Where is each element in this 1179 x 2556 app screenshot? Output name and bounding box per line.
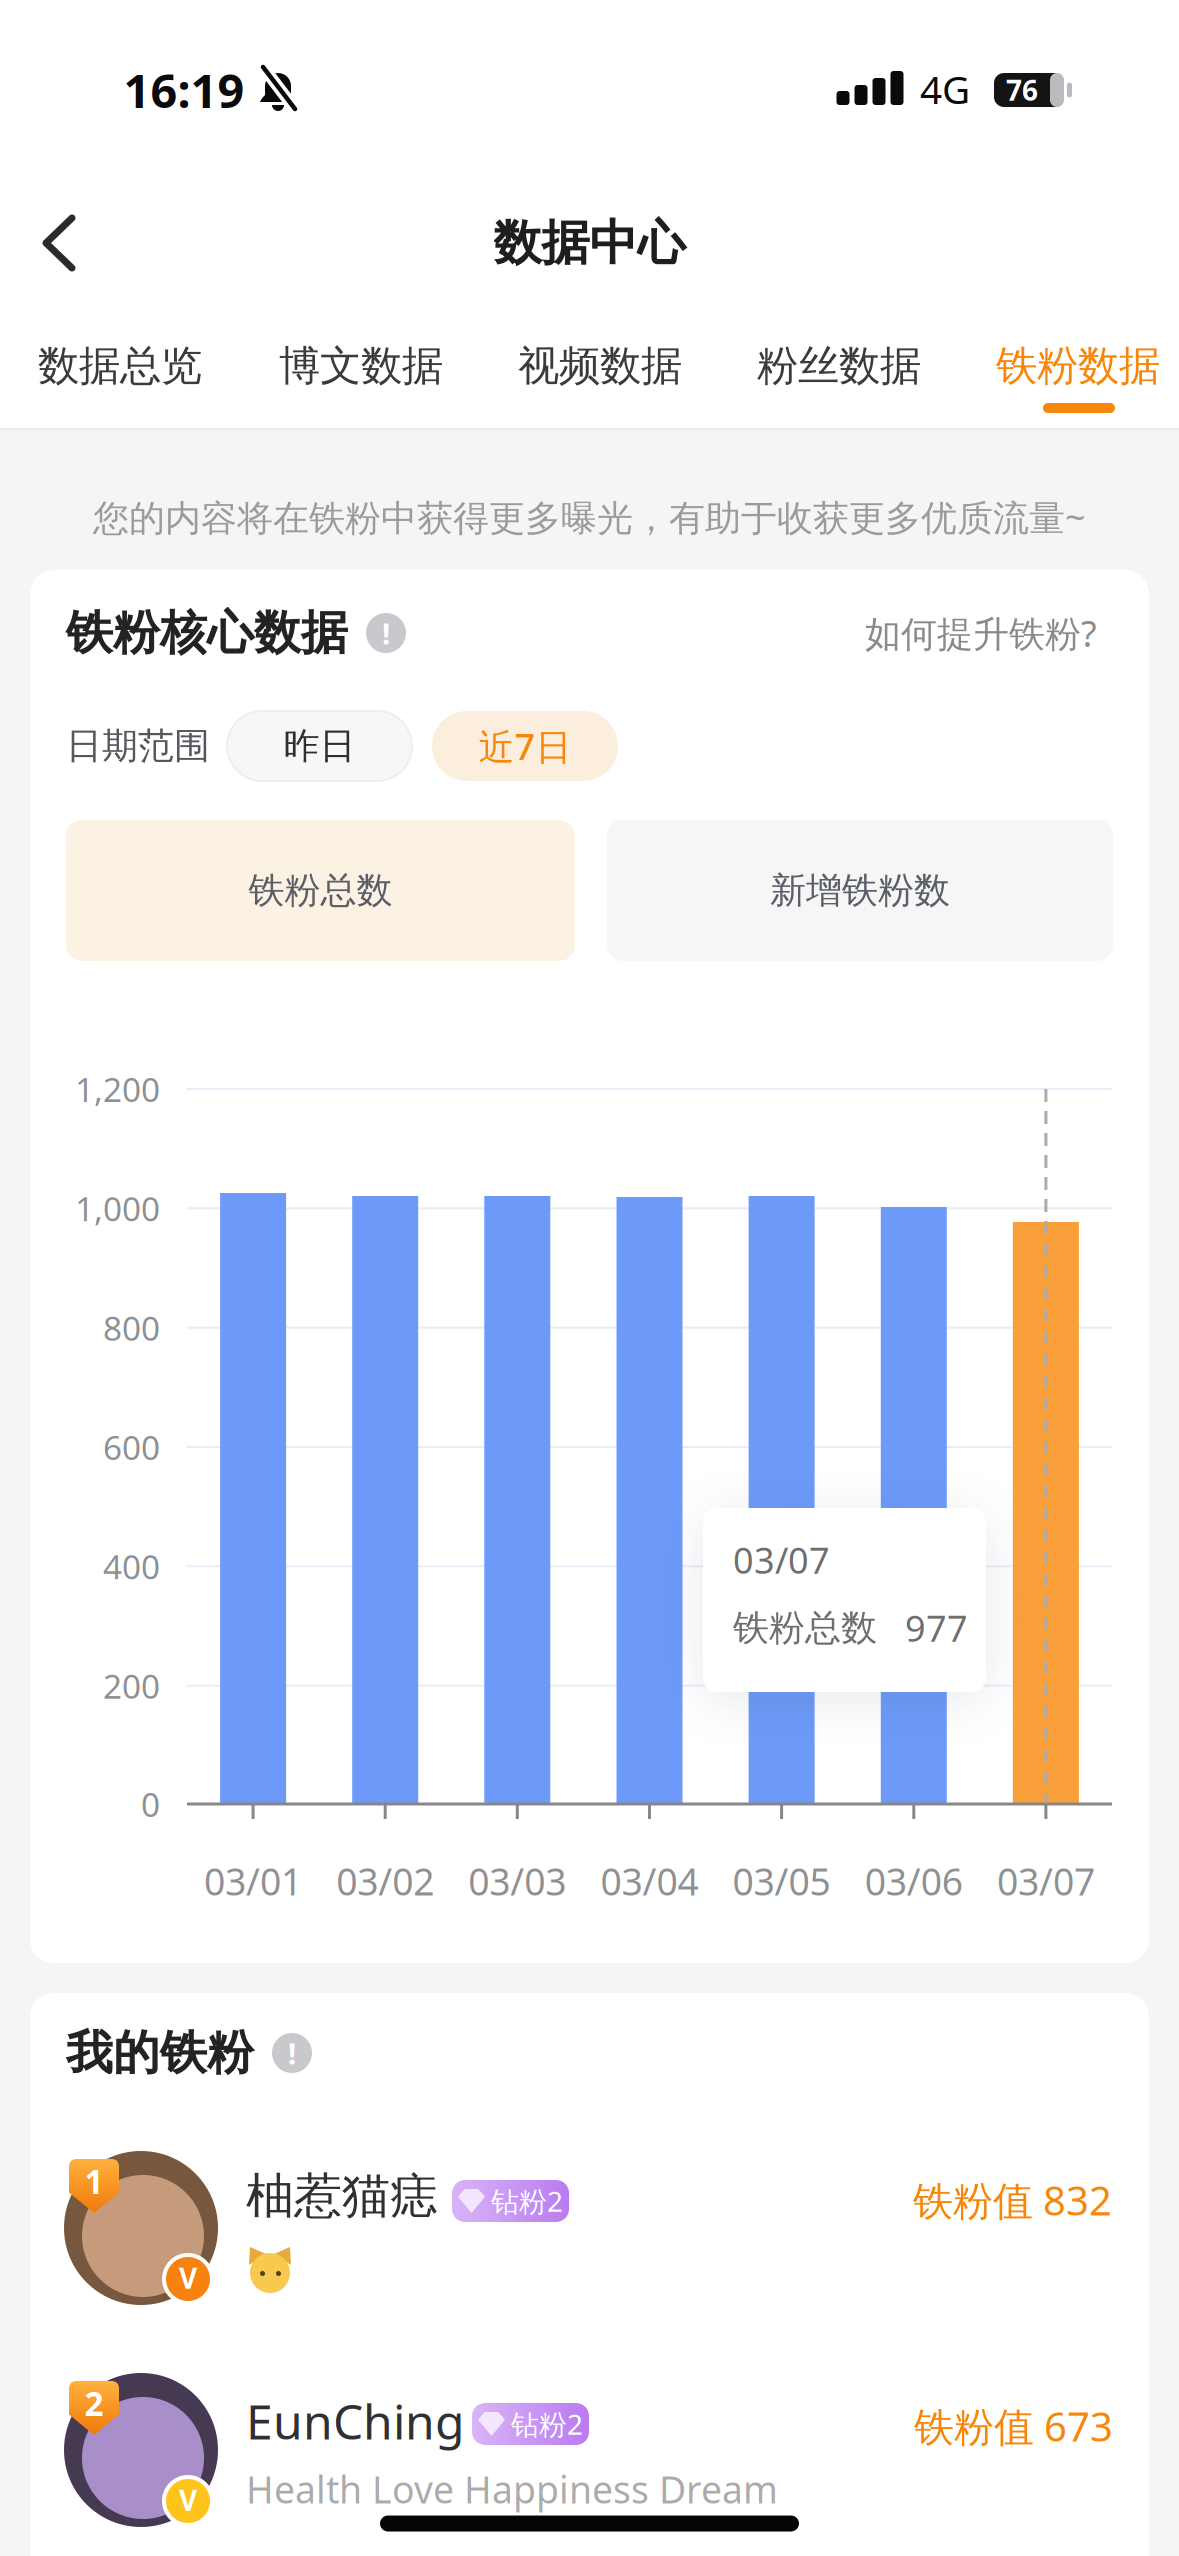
button[interactable]: 钻粉2 (452, 2180, 569, 2222)
staticText: 03/07 (997, 1856, 1095, 1906)
staticText: 03/02 (336, 1856, 434, 1906)
staticText: 03/01 (204, 1856, 302, 1906)
staticText: 03/05 (733, 1856, 831, 1906)
staticText: 视频数据 (518, 341, 682, 391)
staticText: 近7日 (478, 722, 571, 770)
staticText: V (179, 2481, 197, 2519)
staticText: 日期范围 (66, 724, 210, 768)
staticText: Health Love Happiness Dream (246, 2464, 778, 2514)
button[interactable]: 昨日 (227, 711, 412, 781)
button[interactable] (64, 2373, 218, 2527)
button[interactable]: 近7日 (432, 711, 618, 781)
staticText: 如何提升铁粉? (865, 609, 1097, 657)
button[interactable]: 铁粉值 832 (913, 2173, 1112, 2226)
staticText: 粉丝数据 (757, 341, 921, 391)
staticText: 新增铁粉数 (770, 868, 950, 913)
staticText: 钻粉2 (511, 2405, 583, 2443)
staticText: 柚惹猫痣 (246, 2166, 438, 2225)
staticText: 03/04 (600, 1856, 698, 1906)
button[interactable]: 博文数据 (279, 341, 443, 391)
button[interactable]: 铁粉值 673 (914, 2399, 1113, 2452)
staticText: 76 (1006, 71, 1038, 109)
staticText: 800 (103, 1306, 160, 1350)
staticText: 03/06 (865, 1856, 963, 1906)
staticText: 铁粉总数 (733, 1606, 877, 1650)
staticText: 200 (103, 1664, 160, 1708)
button[interactable]: 数据总览 (38, 341, 202, 391)
button[interactable]: 视频数据 (518, 341, 682, 391)
staticText: 铁粉核心数据 (66, 604, 348, 662)
staticText: 铁粉数据 (996, 341, 1160, 391)
button[interactable]: 粉丝数据 (757, 341, 921, 391)
staticText: 1,200 (75, 1067, 160, 1111)
staticText: 钻粉2 (491, 2182, 563, 2220)
staticText: 2 (84, 2381, 103, 2425)
staticText: ! (382, 613, 390, 652)
staticText: 数据总览 (38, 341, 202, 391)
staticText: 铁粉值 673 (914, 2399, 1113, 2452)
staticText: 1,000 (75, 1186, 160, 1230)
staticText: 0 (141, 1782, 160, 1826)
staticText: 我的铁粉 (66, 2024, 254, 2082)
staticText: 600 (103, 1425, 160, 1469)
staticText: 977 (905, 1604, 968, 1652)
staticText: 数据中心 (493, 213, 685, 272)
staticText: 您的内容将在铁粉中获得更多曝光，有助于收获更多优质流量~ (93, 493, 1086, 541)
button[interactable]: 铁粉总数 (66, 820, 575, 961)
button[interactable] (64, 2151, 218, 2305)
staticText: EunChing (246, 2389, 465, 2453)
staticText: 4G (920, 63, 970, 115)
staticText: 16:19 (123, 59, 244, 121)
staticText: 03/03 (468, 1856, 566, 1906)
staticText: 博文数据 (279, 341, 443, 391)
staticText: ! (288, 2033, 296, 2072)
staticText: 昨日 (283, 724, 355, 768)
staticText: V (179, 2259, 197, 2297)
staticText: 铁粉值 832 (913, 2173, 1112, 2226)
button[interactable] (42, 215, 76, 271)
button[interactable]: 钻粉2 (472, 2403, 589, 2445)
staticText: 400 (103, 1544, 160, 1588)
staticText: 03/07 (733, 1536, 830, 1584)
button[interactable]: 铁粉数据 (996, 341, 1160, 391)
staticText: 铁粉总数 (248, 868, 392, 913)
button[interactable]: 新增铁粉数 (607, 820, 1113, 961)
button[interactable]: 如何提升铁粉? (865, 609, 1097, 657)
staticText: 1 (84, 2159, 103, 2203)
